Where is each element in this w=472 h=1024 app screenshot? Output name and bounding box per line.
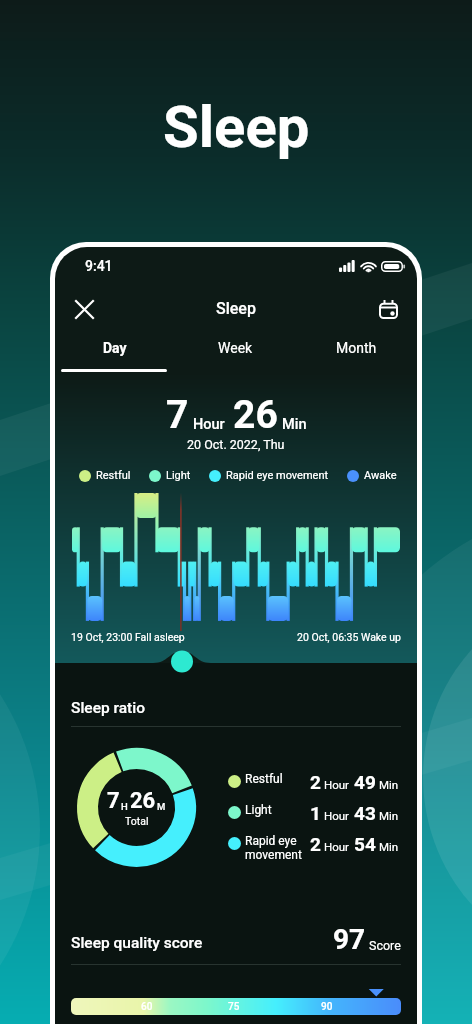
staticText: 20 Oct. 2022, Thu: [187, 437, 285, 452]
staticText: 20 Oct, 06:35 Wake up: [297, 631, 401, 643]
staticText: 19 Oct, 23:00 Fall asleep: [71, 631, 185, 643]
staticText: 43: [354, 802, 376, 824]
staticText: Day: [103, 340, 127, 356]
staticText: Hour: [324, 778, 349, 791]
button[interactable]: Day: [55, 331, 175, 373]
staticText: Min: [282, 416, 307, 433]
button[interactable]: Week: [175, 331, 296, 373]
staticText: 90: [321, 1001, 333, 1013]
staticText: 7: [166, 392, 189, 438]
staticText: Restful: [96, 469, 131, 482]
staticText: Hour: [324, 809, 349, 822]
staticText: Awake: [364, 469, 397, 482]
staticText: Rapid eye movement: [226, 469, 329, 482]
staticText: 2: [310, 833, 321, 855]
staticText: Sleep quality score: [71, 934, 203, 952]
staticText: 1: [310, 802, 321, 824]
staticText: 9:41: [85, 258, 113, 274]
staticText: Rapid eye movement: [245, 834, 302, 862]
staticText: Score: [369, 938, 401, 953]
staticText: 26: [233, 392, 278, 438]
button[interactable]: Close: [65, 290, 103, 328]
staticText: 26: [130, 788, 156, 814]
staticText: M: [157, 801, 166, 812]
staticText: Min: [379, 840, 399, 853]
staticText: Restful: [245, 772, 283, 786]
staticText: Sleep: [163, 93, 310, 161]
staticText: Sleep ratio: [71, 699, 145, 717]
staticText: Sleep: [216, 299, 256, 318]
staticText: 2: [310, 771, 321, 793]
staticText: Hour: [324, 840, 349, 853]
staticText: 75: [228, 1001, 240, 1013]
button[interactable]: Month: [296, 331, 417, 373]
staticText: Hour: [193, 416, 225, 433]
staticText: 54: [354, 833, 376, 855]
staticText: Light: [245, 803, 272, 817]
staticText: 60: [141, 1001, 153, 1013]
staticText: Total: [125, 815, 149, 827]
staticText: Month: [336, 340, 377, 356]
staticText: Week: [218, 340, 253, 356]
staticText: Light: [166, 469, 191, 482]
staticText: Min: [379, 809, 399, 822]
staticText: Min: [379, 778, 399, 791]
staticText: 97: [333, 923, 366, 956]
staticText: 7: [107, 788, 120, 814]
button[interactable]: Calendar: [369, 290, 407, 328]
staticText: 49: [354, 771, 376, 793]
staticText: H: [121, 801, 128, 812]
